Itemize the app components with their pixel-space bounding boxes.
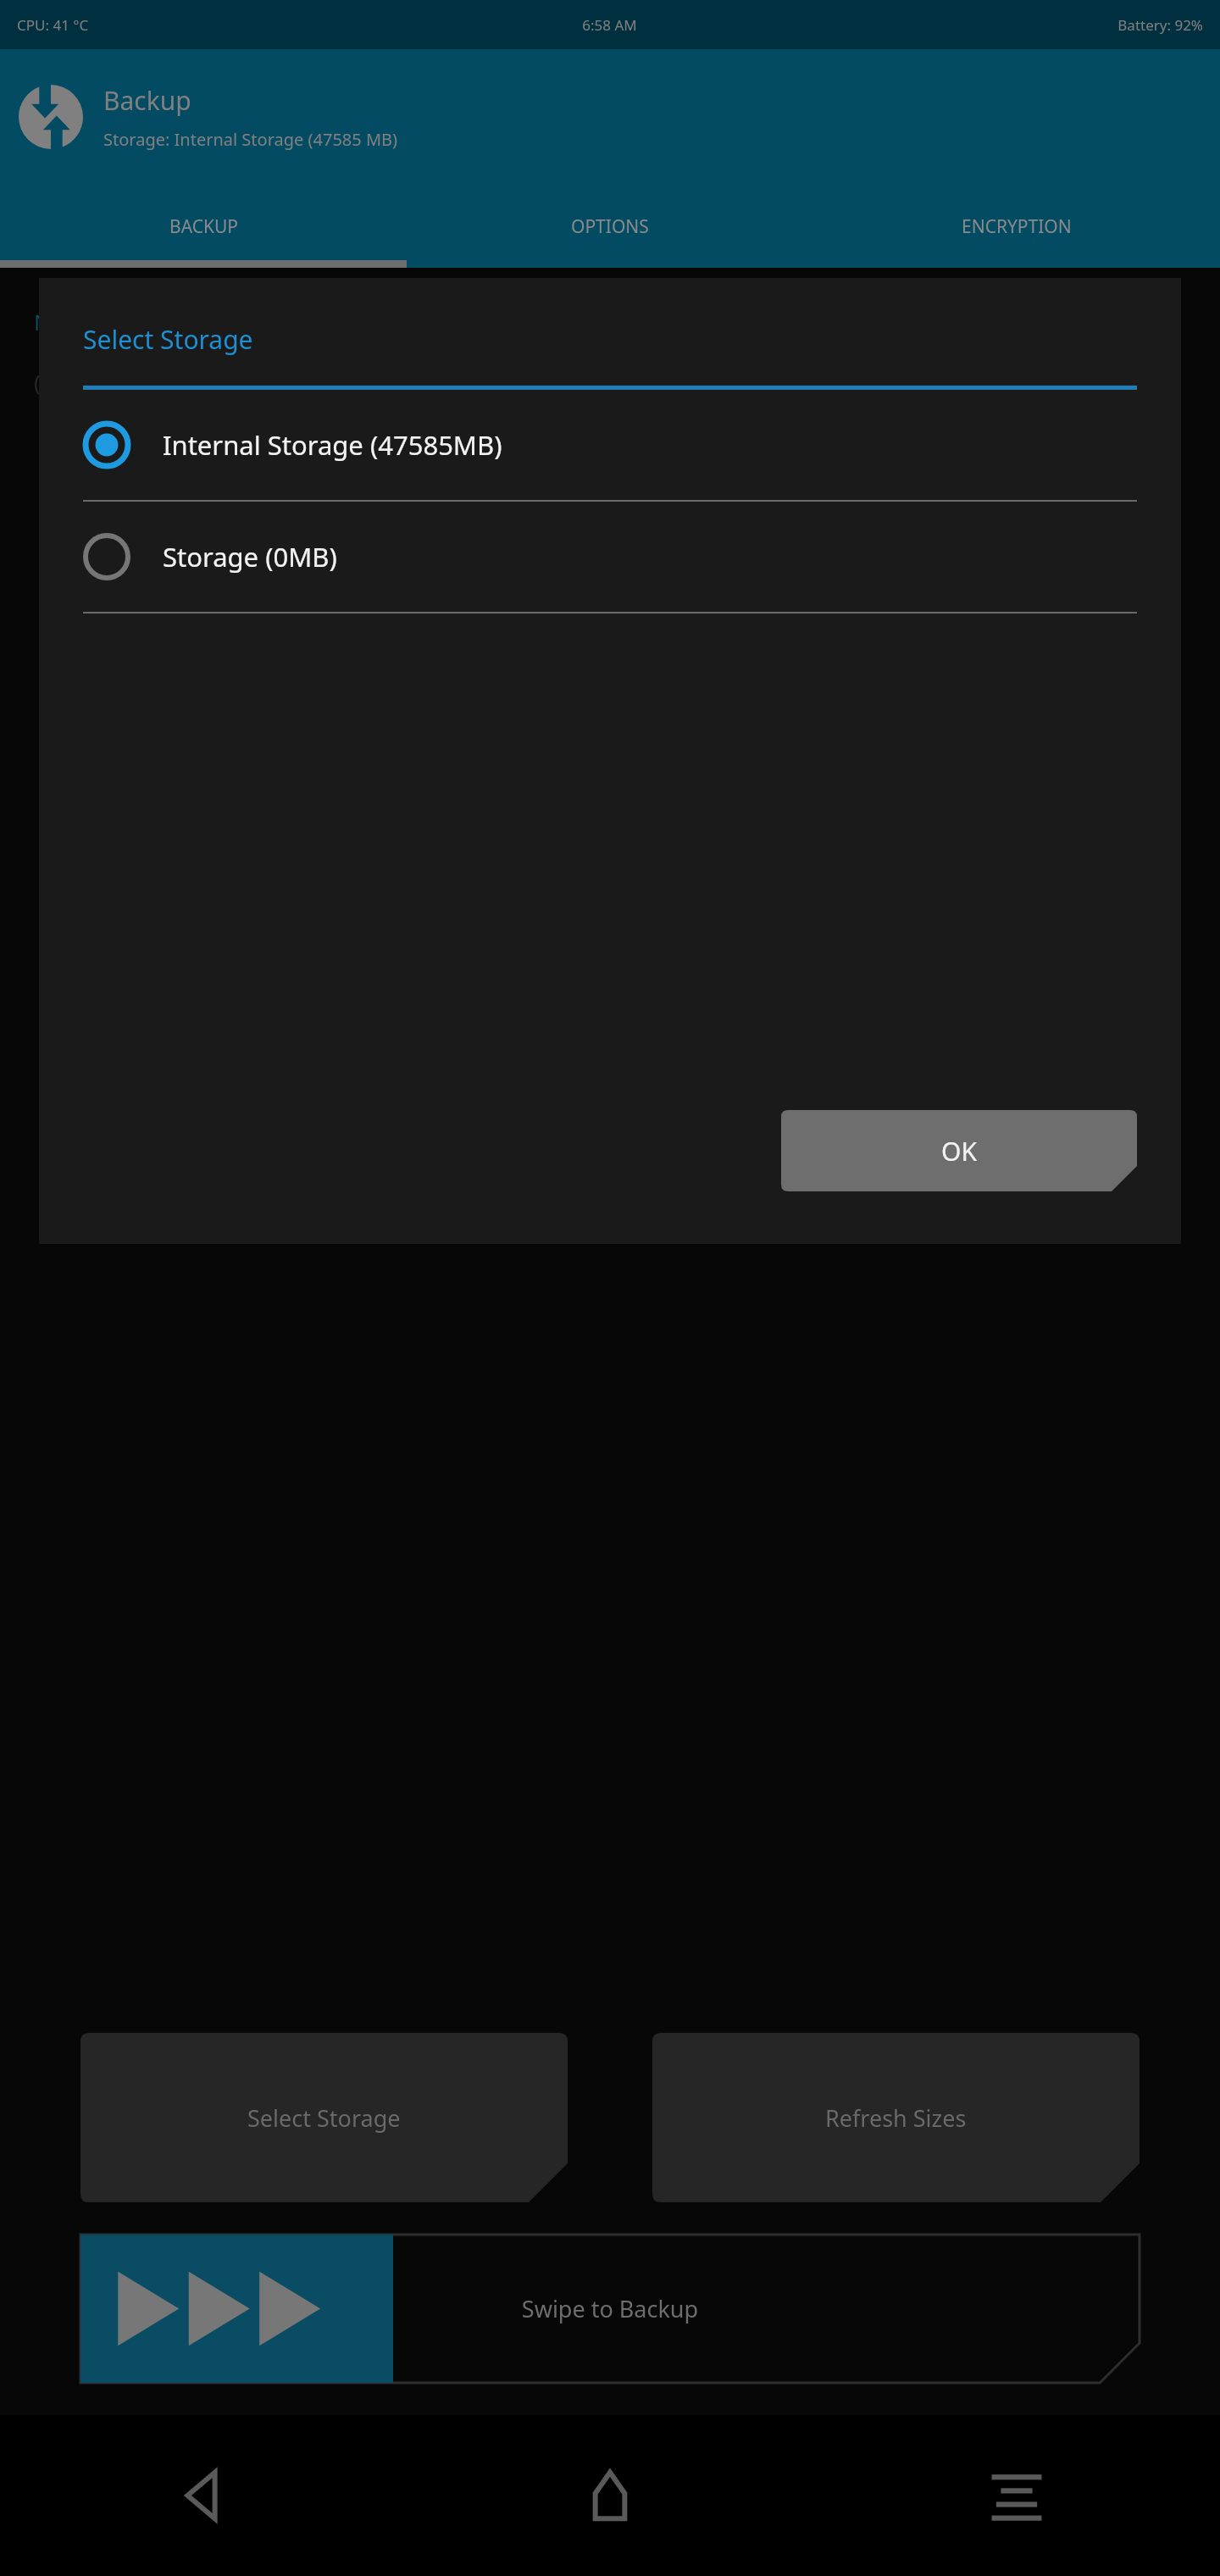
staticText: Select Storage — [83, 322, 253, 357]
staticText: CPU: 41 °C — [17, 15, 412, 35]
staticText: Refresh Sizes — [825, 2102, 967, 2134]
staticText: Battery: 92% — [807, 15, 1203, 35]
button[interactable]: Internal Storage (47585MB) — [83, 390, 1137, 500]
staticText: OPTIONS — [571, 214, 649, 239]
staticText: Swipe to Backup — [80, 2293, 1140, 2324]
staticText: 6:58 AM — [412, 15, 807, 35]
button[interactable]: Swipe to Backup — [80, 2235, 1140, 2383]
staticText: Storage: Internal Storage (47585 MB) — [103, 128, 398, 151]
staticText: (Auto Generate) — [34, 367, 198, 397]
button[interactable]: Home — [407, 2415, 813, 2576]
button[interactable]: Select Storage — [80, 2033, 568, 2202]
staticText: Storage (0MB) — [163, 539, 337, 575]
button[interactable]: Storage (0MB) — [83, 502, 1137, 612]
button[interactable]: OPTIONS — [407, 185, 813, 268]
button[interactable]: Menu — [813, 2415, 1220, 2576]
button[interactable]: BACKUP — [0, 185, 407, 268]
staticText: Backup — [103, 83, 191, 118]
staticText: OK — [941, 1134, 977, 1169]
button[interactable]: OK — [781, 1110, 1137, 1191]
staticText: Name: — [34, 307, 103, 336]
staticText: Select Storage — [247, 2102, 401, 2134]
staticText: Internal Storage (47585MB) — [163, 427, 502, 463]
staticText: ENCRYPTION — [962, 214, 1072, 239]
staticText: BACKUP — [169, 214, 238, 239]
button[interactable]: Back — [0, 2415, 407, 2576]
button[interactable]: Refresh Sizes — [652, 2033, 1140, 2202]
button[interactable]: ENCRYPTION — [813, 185, 1220, 268]
